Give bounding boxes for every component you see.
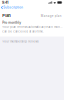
staticText: Your plan renews automatically each mont… [2,25,62,29]
button[interactable]: Manage plan [41,14,62,18]
staticText: Your membership renews [2,40,38,43]
staticText: Pro monthly [2,21,21,24]
staticText: can be cancelled at any time. [2,30,44,33]
staticText: Manage plan [41,14,62,18]
staticText: Plan [2,13,10,18]
button[interactable]: Subscription [0,5,25,10]
staticText: 9:41 [2,0,8,5]
staticText: Subscription [3,6,23,9]
